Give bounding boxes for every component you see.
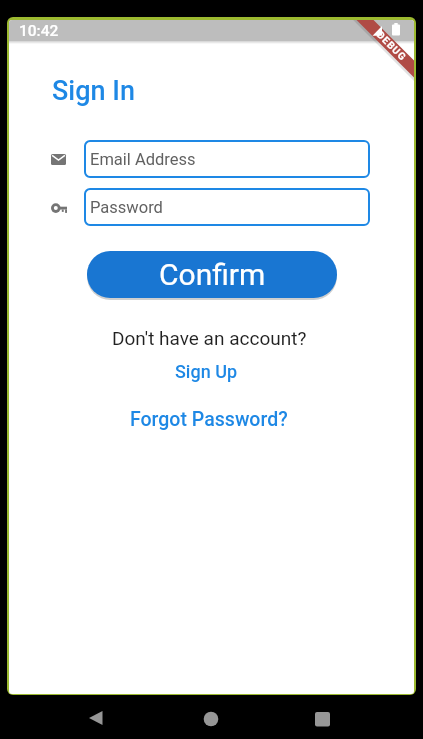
staticText: Email Address	[90, 150, 196, 169]
button[interactable]: Password	[84, 188, 370, 226]
staticText: Password	[90, 198, 163, 217]
button[interactable]	[171, 695, 251, 739]
button[interactable]: Confirm	[87, 251, 337, 298]
staticText: DEBUG	[374, 29, 409, 64]
staticText: Don't have an account?	[112, 327, 307, 349]
button[interactable]	[56, 695, 136, 739]
staticText: 10:42	[19, 22, 59, 40]
staticText: Confirm	[159, 257, 266, 292]
button[interactable]: Forgot Password?	[130, 408, 288, 431]
button[interactable]: Sign Up	[175, 361, 238, 382]
button[interactable]: Email Address	[84, 140, 370, 178]
staticText: Sign In	[52, 75, 135, 107]
button[interactable]	[282, 695, 362, 739]
